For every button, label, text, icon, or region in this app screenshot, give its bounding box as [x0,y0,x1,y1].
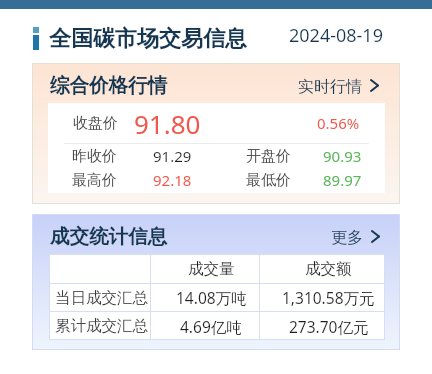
staticText: 90.93 [323,146,362,166]
staticText: 0.56% [317,113,360,133]
staticText: 273.70亿元 [289,316,369,337]
staticText: 收盘价 [73,114,118,133]
staticText: 累计成交汇总 [55,316,148,336]
staticText: 昨收价 [72,147,117,166]
staticText: 当日成交汇总 [55,288,148,308]
staticText: 更多 [331,228,363,248]
staticText: 成交量 [188,259,235,279]
button[interactable]: 实时行情 [298,77,379,97]
button[interactable]: 更多 [331,228,380,248]
staticText: 91.29 [153,146,192,166]
staticText: 实时行情 [298,77,362,97]
staticText: 成交统计信息 [50,224,167,249]
staticText: 92.18 [153,170,192,190]
staticText: 成交额 [305,259,352,279]
staticText: 全国碳市场交易信息 [49,25,247,53]
staticText: 91.80 [134,106,201,141]
staticText: 综合价格行情 [50,73,167,98]
staticText: 开盘价 [246,147,291,166]
staticText: 最高价 [72,171,117,190]
staticText: 最低价 [246,171,291,190]
staticText: 14.08万吨 [176,287,247,308]
staticText: 2024-08-19 [289,23,383,48]
staticText: 89.97 [323,170,362,190]
staticText: 4.69亿吨 [180,316,242,337]
staticText: 1,310.58万元 [282,287,375,308]
